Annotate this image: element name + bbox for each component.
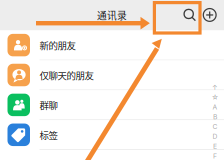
staticText: A (212, 103, 217, 111)
button[interactable]: 群聊 (0, 90, 224, 120)
button[interactable]: 仅聊天的朋友 (0, 60, 224, 90)
staticText: ↑ (212, 83, 218, 91)
staticText: 通讯录 (97, 8, 127, 22)
button[interactable]: 新的朋友 (0, 30, 224, 60)
staticText: 仅聊天的朋友 (39, 68, 93, 82)
staticText: D (212, 132, 217, 140)
staticText: 群聊 (39, 98, 57, 112)
button[interactable]: Add (200, 3, 220, 27)
staticText: E (213, 142, 217, 150)
staticText: ☆ (211, 93, 218, 101)
button[interactable]: 标签 (0, 120, 224, 150)
staticText: B (213, 113, 217, 121)
button[interactable]: Search (180, 3, 200, 27)
staticText: 新的朋友 (39, 38, 75, 52)
staticText: F (213, 152, 217, 160)
staticText: 标签 (39, 128, 57, 142)
staticText: C (212, 122, 217, 131)
